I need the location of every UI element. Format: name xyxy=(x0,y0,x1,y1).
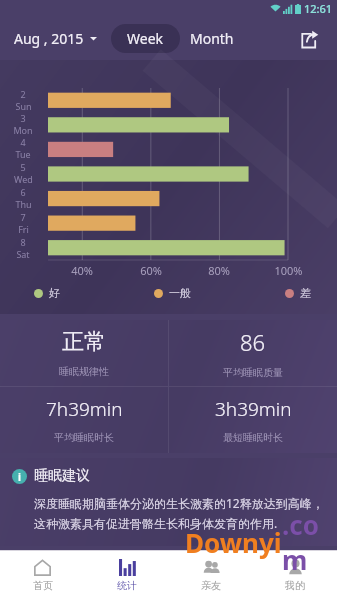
staticText: 12:61 xyxy=(304,1,333,16)
button[interactable]: Aug , 2015 xyxy=(12,23,99,54)
button[interactable]: Share xyxy=(291,21,327,57)
button[interactable]: 首页 xyxy=(0,551,85,600)
staticText: Sun xyxy=(15,100,32,112)
staticText: 100% xyxy=(274,263,303,278)
staticText: 最短睡眠时长 xyxy=(223,431,283,444)
staticText: 5 xyxy=(20,161,26,173)
staticText: 8 xyxy=(20,236,26,248)
staticText: 平均睡眠时长 xyxy=(54,431,114,444)
staticText: 首页 xyxy=(33,579,53,592)
staticText: Aug , 2015 xyxy=(14,29,84,48)
staticText: 平均睡眠质量 xyxy=(223,366,283,379)
staticText: 4 xyxy=(20,136,26,148)
staticText: 2 xyxy=(20,88,26,100)
staticText: 我的 xyxy=(285,579,305,592)
staticText: Downyi xyxy=(185,525,282,560)
staticText: 统计 xyxy=(117,579,137,592)
staticText: 60% xyxy=(140,263,162,278)
staticText: 80% xyxy=(208,263,230,278)
staticText: 好 xyxy=(49,286,60,300)
staticText: 3 xyxy=(20,112,26,124)
staticText: Mon xyxy=(13,124,33,136)
button[interactable]: 3h39min xyxy=(169,387,337,453)
button[interactable]: Week xyxy=(111,24,180,53)
staticText: Tue xyxy=(15,148,31,160)
staticText: i xyxy=(18,470,21,484)
staticText: Wed xyxy=(14,173,33,185)
staticText: 深度睡眠期脑垂体分泌的生长激素的12释放达到高峰，这种激素具有促进骨骼生长和身体… xyxy=(34,495,329,531)
button[interactable]: 86 xyxy=(169,320,337,386)
staticText: Thu xyxy=(15,198,32,210)
staticText: 亲友 xyxy=(201,579,221,592)
staticText: 40% xyxy=(71,263,93,278)
staticText: Week xyxy=(127,29,164,48)
staticText: Month xyxy=(190,29,234,48)
staticText: 正常 xyxy=(62,328,106,356)
staticText: 睡眠建议 xyxy=(34,467,90,485)
staticText: 3h39min xyxy=(215,396,292,422)
staticText: .com xyxy=(282,507,337,577)
staticText: 睡眠规律性 xyxy=(59,365,109,378)
button[interactable]: 我的 xyxy=(253,551,337,600)
button[interactable]: 7h39min xyxy=(0,387,168,453)
staticText: 86 xyxy=(240,327,266,357)
staticText: Sat xyxy=(16,248,30,260)
button[interactable]: 亲友 xyxy=(169,551,253,600)
button[interactable]: 正常 xyxy=(0,320,168,386)
staticText: 差 xyxy=(300,286,311,300)
staticText: 7 xyxy=(20,211,26,223)
staticText: 一般 xyxy=(169,286,191,300)
button[interactable]: Month xyxy=(180,24,244,53)
staticText: 7h39min xyxy=(46,396,123,422)
staticText: 6 xyxy=(20,186,26,198)
button[interactable]: 统计 xyxy=(85,551,169,600)
staticText: Fri xyxy=(18,223,29,235)
